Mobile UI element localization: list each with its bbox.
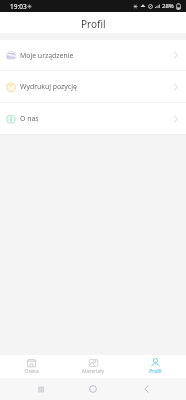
button[interactable]: O nas (0, 103, 186, 134)
staticText: O nas (20, 114, 39, 123)
button[interactable]: Materiały (62, 355, 124, 378)
staticText: Materiały (82, 368, 104, 375)
button[interactable]: Moje urządzenie (0, 40, 186, 70)
button[interactable]: Home (80, 378, 106, 400)
button[interactable]: Oteka (0, 355, 62, 378)
button[interactable]: Back (133, 378, 159, 400)
staticText: Profil (81, 17, 106, 31)
button[interactable]: Wydrukuj pozycję (0, 71, 186, 102)
staticText: Oteka (24, 368, 39, 375)
staticText: Wydrukuj pozycję (20, 82, 77, 91)
staticText: Moje urządzenie (20, 51, 74, 60)
staticText: Profil (149, 368, 162, 375)
button[interactable]: Recents (28, 378, 54, 400)
staticText: 28% (162, 2, 174, 10)
button[interactable]: Profil (124, 355, 186, 378)
staticText: 19:03 (10, 2, 27, 11)
